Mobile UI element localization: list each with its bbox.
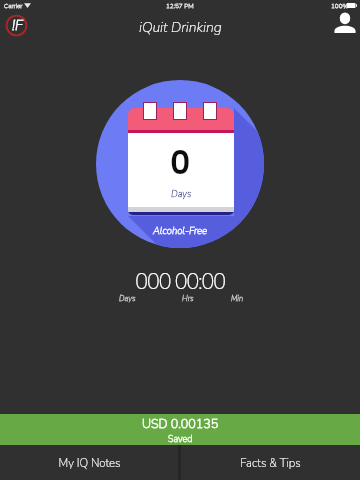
staticText: Alcohol-Free: [153, 224, 208, 237]
staticText: My IQ Notes: [58, 455, 121, 471]
staticText: Carrier: [4, 2, 23, 11]
staticText: USD 0.00135: [142, 415, 219, 432]
staticText: 100%: [331, 2, 349, 11]
button[interactable]: iQuit Drinking logo: [4, 13, 29, 38]
button[interactable]: Facts & Tips: [181, 445, 360, 480]
staticText: 0: [170, 141, 191, 185]
staticText: iQuit Drinking: [139, 18, 222, 37]
button[interactable]: USD 0.00135: [0, 414, 360, 445]
staticText: Days: [171, 188, 192, 201]
staticText: Saved: [168, 433, 193, 445]
staticText: 12:57 PM: [166, 2, 194, 11]
staticText: !F: [12, 16, 23, 35]
staticText: Facts & Tips: [240, 455, 301, 471]
button[interactable]: My IQ Notes: [0, 445, 178, 480]
staticText: 000 00:00: [135, 267, 225, 297]
button[interactable]: Profile: [334, 12, 356, 33]
staticText: Days: [119, 293, 136, 303]
staticText: Min: [231, 293, 244, 303]
staticText: Hrs: [182, 293, 194, 303]
